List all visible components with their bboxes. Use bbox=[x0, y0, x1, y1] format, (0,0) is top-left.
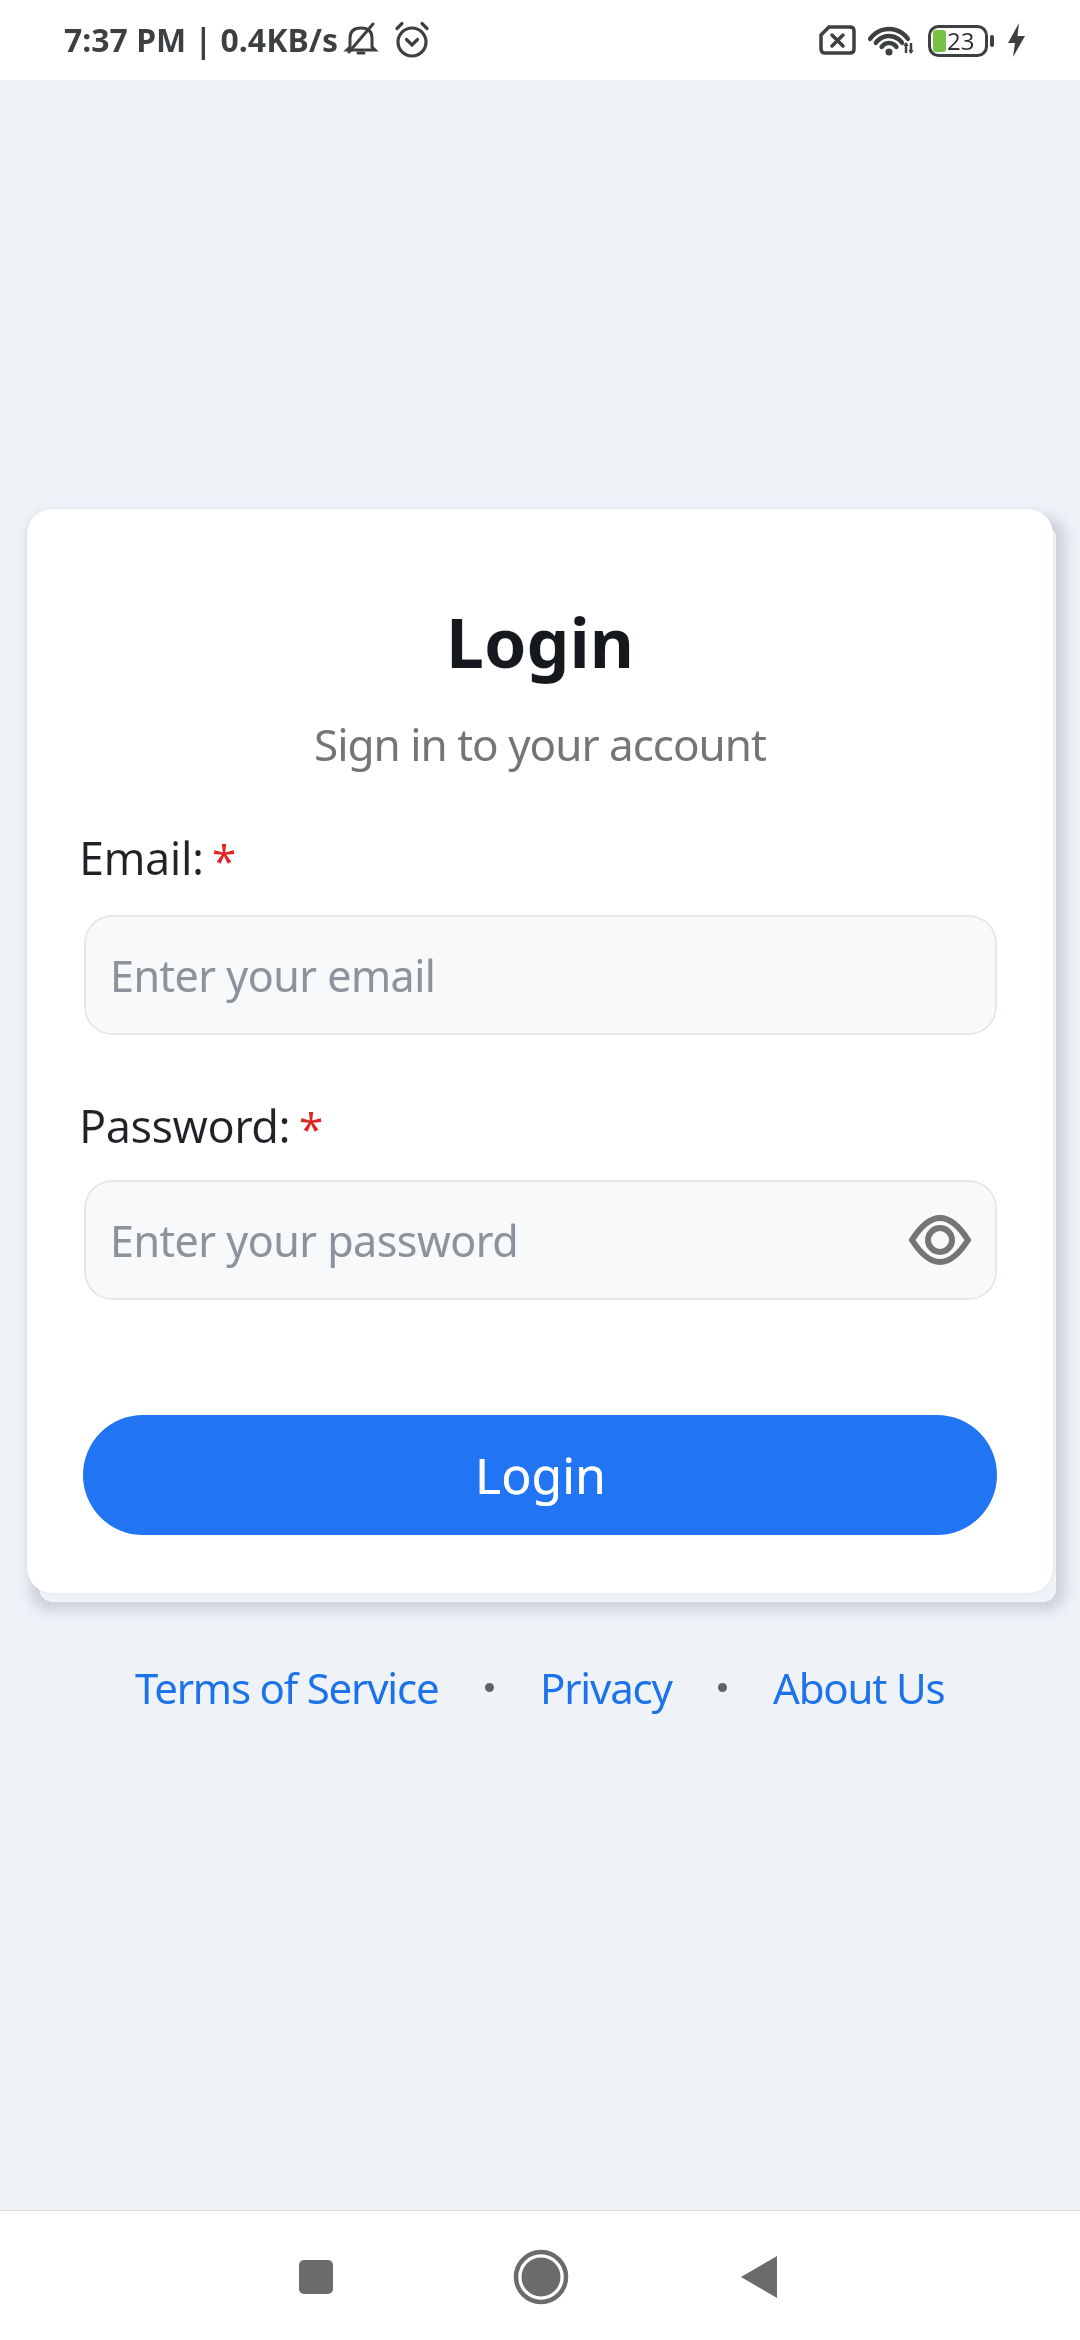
staticText: Enter your email bbox=[110, 946, 436, 1005]
staticText: 23 bbox=[947, 24, 975, 57]
staticText: * bbox=[299, 1098, 324, 1158]
staticText: * bbox=[212, 830, 237, 890]
staticText: Email: bbox=[79, 827, 204, 887]
button[interactable]: Login bbox=[83, 1415, 997, 1535]
staticText: Password: bbox=[79, 1095, 291, 1155]
button[interactable] bbox=[291, 2252, 341, 2302]
button[interactable] bbox=[735, 2252, 785, 2302]
button[interactable]: About Us bbox=[773, 1659, 945, 1716]
staticText: Login bbox=[475, 1441, 606, 1509]
staticText: 7:37 PM | 0.4KB/s bbox=[64, 18, 339, 62]
staticText: Enter your password bbox=[110, 1211, 519, 1270]
button[interactable]: Enter your password bbox=[84, 1180, 997, 1300]
button[interactable]: Privacy bbox=[540, 1659, 672, 1716]
staticText: Login bbox=[446, 595, 635, 688]
button[interactable]: Enter your email bbox=[84, 915, 997, 1035]
staticText: Sign in to your account bbox=[314, 714, 766, 774]
button[interactable] bbox=[511, 2247, 571, 2307]
button[interactable]: Terms of Service bbox=[135, 1659, 439, 1716]
